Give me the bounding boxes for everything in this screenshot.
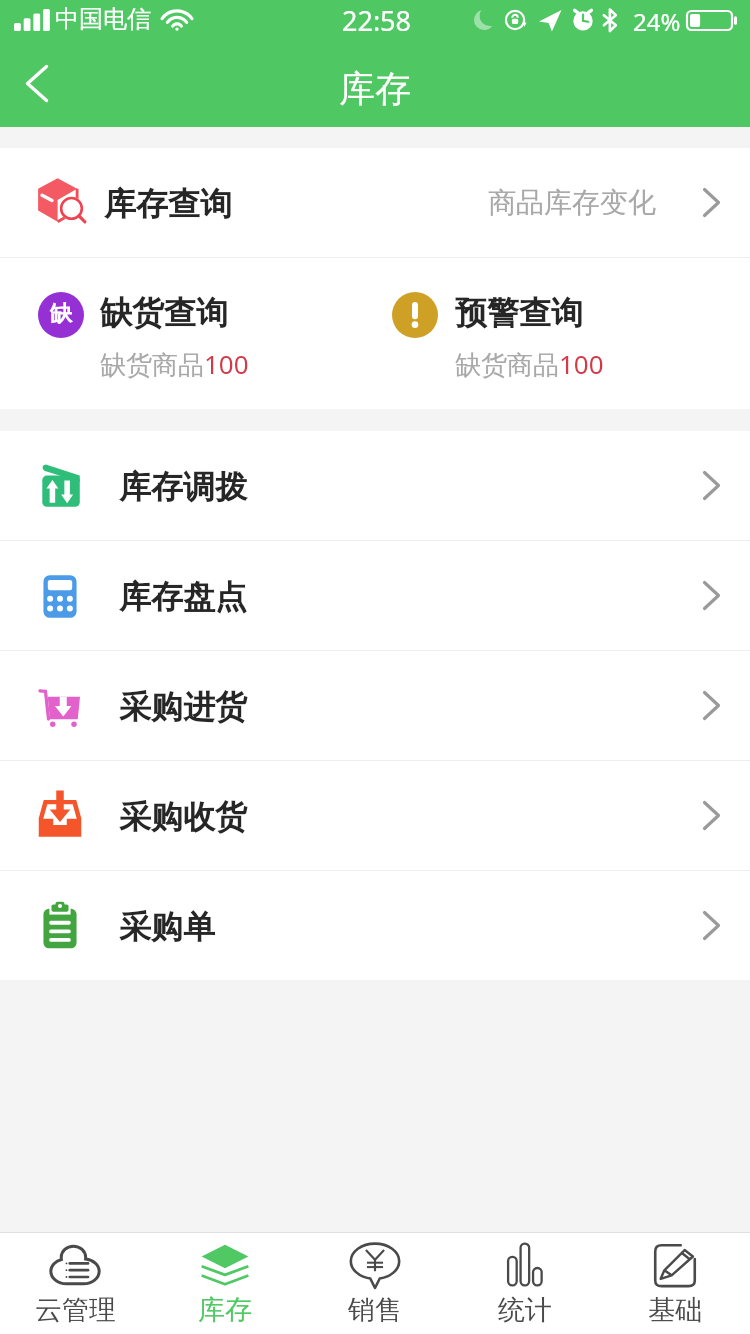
staticText: 库存 — [198, 1293, 252, 1327]
staticText: 采购收货 — [119, 797, 247, 837]
staticText: 预警查询 — [455, 293, 583, 333]
button[interactable]: 云管理 — [0, 1233, 150, 1334]
button[interactable]: 预警查询 — [375, 258, 750, 409]
staticText: 基础 — [648, 1293, 702, 1327]
button[interactable]: 采购收货 — [0, 761, 750, 870]
staticText: 统计 — [498, 1293, 552, 1327]
staticText: 缺货查询 — [100, 293, 228, 333]
button[interactable]: 库存查询 — [0, 148, 750, 257]
button[interactable]: 库存盘点 — [0, 541, 750, 650]
button[interactable]: 销售 — [300, 1233, 450, 1334]
staticText: 缺货商品100 — [455, 346, 604, 382]
staticText: 中国电信 — [55, 4, 151, 34]
button[interactable]: 采购进货 — [0, 651, 750, 760]
staticText: 库存盘点 — [119, 577, 247, 617]
button[interactable]: 统计 — [450, 1233, 600, 1334]
staticText: 库存查询 — [104, 184, 232, 224]
staticText: 采购单 — [119, 907, 215, 947]
button[interactable]: 缺 — [0, 258, 375, 409]
button[interactable]: Back — [0, 40, 74, 127]
staticText: 缺货商品100 — [100, 346, 249, 382]
button[interactable]: 库存 — [150, 1233, 300, 1334]
staticText: 22:58 — [342, 2, 412, 39]
staticText: 库存 — [339, 66, 411, 111]
staticText: 销售 — [348, 1293, 402, 1327]
staticText: 库存调拨 — [119, 467, 247, 507]
staticText: 云管理 — [35, 1293, 116, 1327]
staticText: 商品库存变化 — [488, 185, 656, 220]
button[interactable]: 库存调拨 — [0, 431, 750, 540]
button[interactable]: 采购单 — [0, 871, 750, 980]
staticText: 采购进货 — [119, 687, 247, 727]
button[interactable]: 基础 — [600, 1233, 750, 1334]
staticText: 缺 — [50, 300, 72, 328]
staticText: 24% — [633, 5, 681, 38]
